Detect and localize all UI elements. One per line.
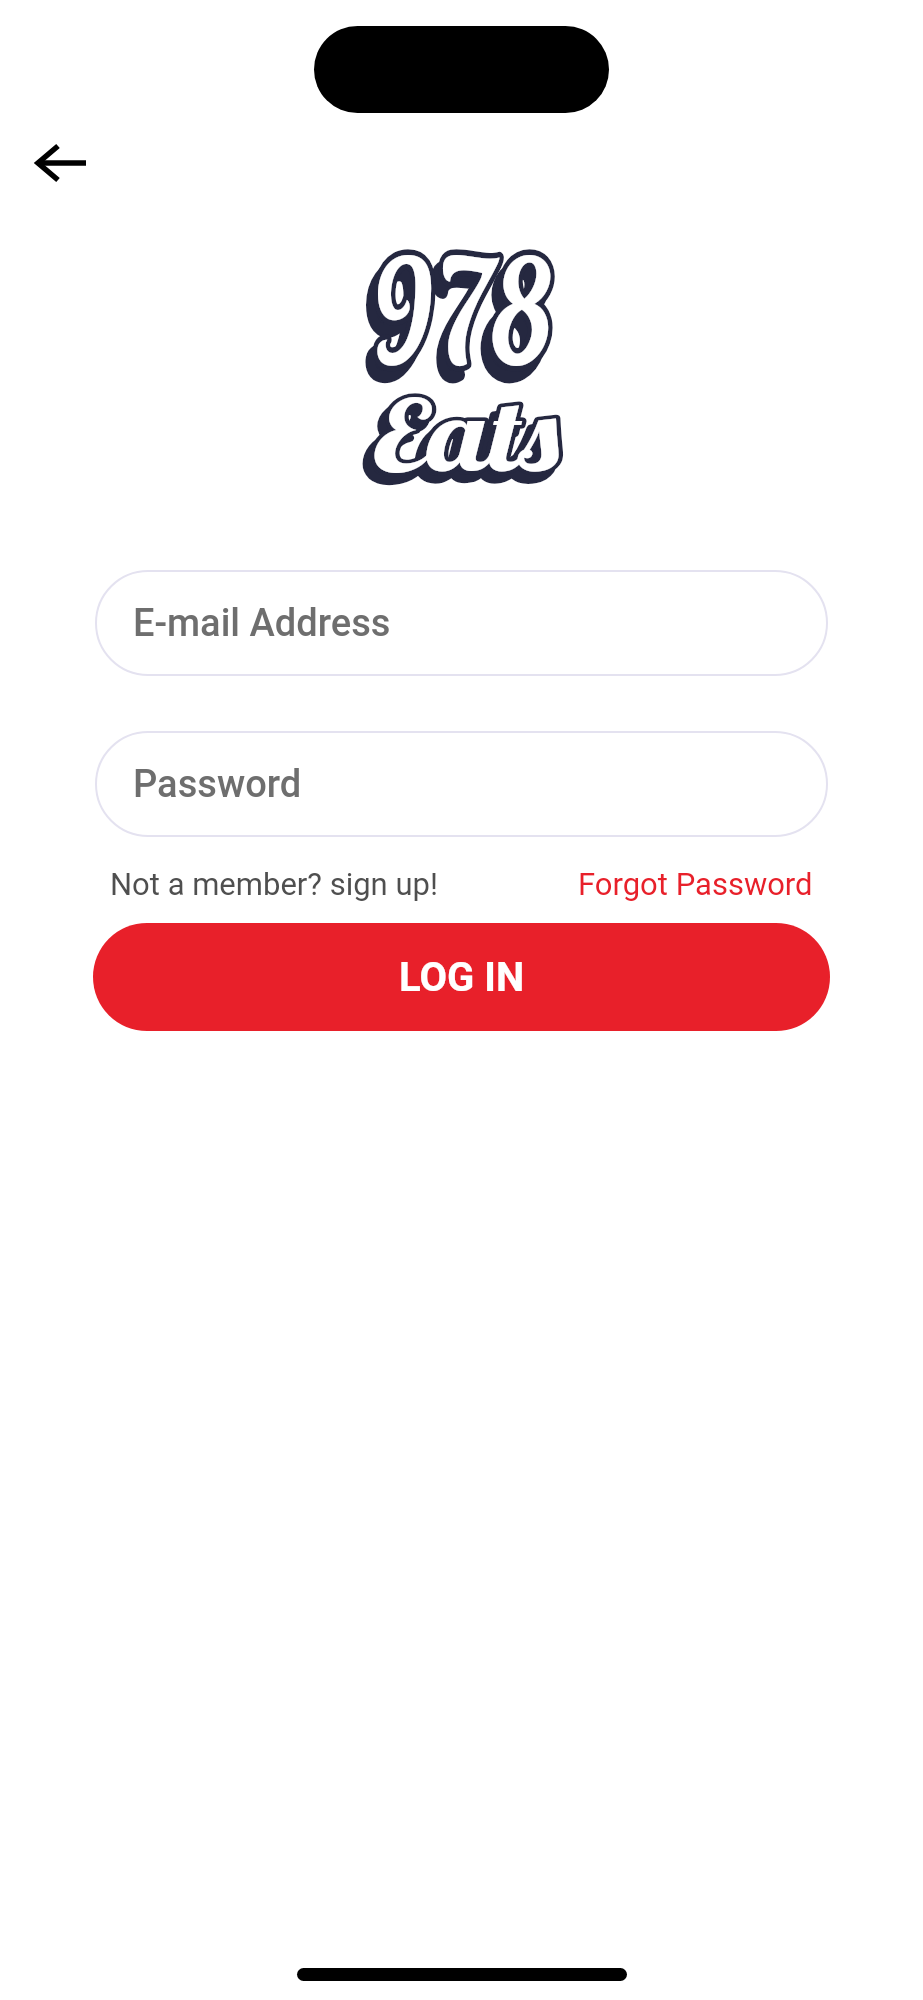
staticText: LOG IN: [399, 954, 525, 1001]
staticText: Eats: [366, 380, 559, 504]
staticText: Password: [133, 762, 302, 807]
button[interactable]: [22, 128, 102, 198]
staticText: Eats: [373, 372, 566, 496]
button[interactable]: E-mail Address: [95, 570, 828, 676]
staticText: Eats: [366, 380, 559, 504]
staticText: 978: [370, 219, 554, 402]
button[interactable]: Forgot Password: [578, 866, 813, 902]
staticText: E-mail Address: [133, 601, 391, 646]
button[interactable]: Not a member? sign up!: [110, 866, 438, 902]
staticText: 978: [363, 230, 547, 413]
button[interactable]: LOG IN: [93, 923, 830, 1031]
staticText: Eats: [373, 372, 566, 496]
button[interactable]: Password: [95, 731, 828, 837]
staticText: 978: [363, 230, 547, 413]
staticText: 978: [370, 219, 554, 402]
